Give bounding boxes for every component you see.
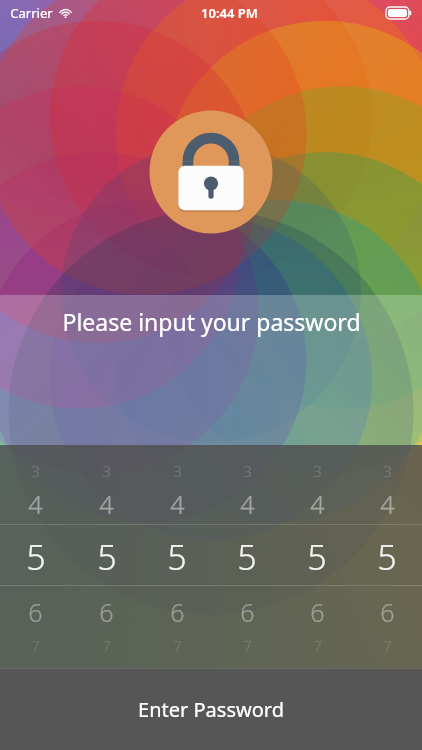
staticText: 4 bbox=[380, 487, 395, 521]
staticText: 4 bbox=[170, 487, 185, 521]
staticText: 5 bbox=[167, 534, 187, 580]
button[interactable]: 3 bbox=[0, 445, 71, 668]
button[interactable]: 3 bbox=[282, 445, 352, 668]
staticText: Carrier bbox=[10, 4, 53, 22]
staticText: 3 bbox=[102, 461, 111, 481]
button[interactable]: Enter Password bbox=[0, 668, 422, 750]
staticText: 6 bbox=[28, 595, 43, 629]
staticText: 6 bbox=[310, 595, 325, 629]
staticText: Please input your password bbox=[62, 306, 361, 337]
staticText: 5 bbox=[377, 534, 397, 580]
staticText: 4 bbox=[310, 487, 325, 521]
staticText: 4 bbox=[28, 487, 43, 521]
staticText: 7 bbox=[383, 636, 392, 656]
staticText: 6 bbox=[380, 595, 395, 629]
button[interactable]: 3 bbox=[71, 445, 142, 668]
staticText: 10:44 PM bbox=[201, 4, 258, 22]
staticText: 3 bbox=[383, 461, 392, 481]
staticText: 7 bbox=[173, 636, 182, 656]
staticText: Enter Password bbox=[138, 696, 284, 723]
staticText: 3 bbox=[243, 461, 252, 481]
staticText: 5 bbox=[26, 534, 46, 580]
staticText: 7 bbox=[102, 636, 111, 656]
staticText: 4 bbox=[240, 487, 255, 521]
button[interactable]: 3 bbox=[212, 445, 282, 668]
staticText: 5 bbox=[97, 534, 117, 580]
staticText: 4 bbox=[99, 487, 114, 521]
staticText: 6 bbox=[170, 595, 185, 629]
staticText: 3 bbox=[31, 461, 40, 481]
staticText: 5 bbox=[307, 534, 327, 580]
staticText: 7 bbox=[313, 636, 322, 656]
button[interactable]: 3 bbox=[352, 445, 422, 668]
staticText: 6 bbox=[99, 595, 114, 629]
staticText: 3 bbox=[173, 461, 182, 481]
staticText: 6 bbox=[240, 595, 255, 629]
button[interactable]: 3 bbox=[142, 445, 212, 668]
staticText: 5 bbox=[237, 534, 257, 580]
staticText: 7 bbox=[243, 636, 252, 656]
staticText: 3 bbox=[313, 461, 322, 481]
staticText: 7 bbox=[31, 636, 40, 656]
